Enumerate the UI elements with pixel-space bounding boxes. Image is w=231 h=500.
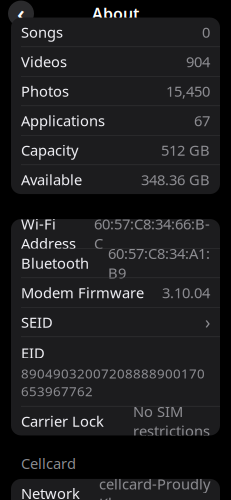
button[interactable]: Songs xyxy=(11,18,220,47)
button[interactable]: Videos xyxy=(11,47,220,76)
staticText: Songs xyxy=(21,22,63,42)
staticText: 89049032007208888900170653967762 xyxy=(21,364,205,400)
staticText: 348.36 GB xyxy=(141,170,210,189)
staticText: 60:57:C8:34:A1:B9 xyxy=(108,244,210,283)
staticText: EID xyxy=(21,343,45,363)
staticText: 15,450 xyxy=(166,81,210,101)
staticText: › xyxy=(205,311,210,334)
button[interactable]: SEID xyxy=(11,308,220,337)
button[interactable]: Capacity xyxy=(11,136,220,165)
staticText: Bluetooth xyxy=(21,253,89,273)
staticText: 512 GB xyxy=(161,140,210,160)
button[interactable]: EID xyxy=(11,337,220,406)
staticText: Available xyxy=(21,170,82,189)
staticText: 67 xyxy=(194,111,210,130)
staticText: Videos xyxy=(21,52,67,71)
button[interactable]: Bluetooth xyxy=(11,249,220,278)
button[interactable]: Wi-Fi Address xyxy=(11,219,220,248)
button[interactable]: Carrier Lock xyxy=(11,406,220,435)
staticText: Wi-Fi Address xyxy=(21,214,76,253)
staticText: SEID xyxy=(21,312,53,332)
staticText: Network xyxy=(21,484,80,500)
staticText: About xyxy=(92,3,139,24)
staticText: cellcard-Proudly Khmer xyxy=(99,474,210,500)
staticText: 0 xyxy=(202,22,210,42)
staticText: 904 xyxy=(186,52,210,71)
staticText: Photos xyxy=(21,81,69,101)
button[interactable]: Photos xyxy=(11,77,220,106)
staticText: 60:57:C8:34:66:BC xyxy=(94,214,210,253)
button[interactable]: Available xyxy=(11,165,220,194)
staticText: 3.10.04 xyxy=(162,283,210,302)
staticText: Applications xyxy=(21,111,105,130)
button[interactable]: Network xyxy=(11,479,220,500)
staticText: Carrier Lock xyxy=(21,411,104,431)
button[interactable]: Modem Firmware xyxy=(11,278,220,307)
button[interactable]: Applications xyxy=(11,106,220,135)
staticText: ‹ xyxy=(17,0,25,29)
button[interactable]: Back xyxy=(6,0,36,29)
staticText: Cellcard xyxy=(21,453,76,473)
staticText: No SIM restrictions xyxy=(133,401,210,440)
staticText: Modem Firmware xyxy=(21,283,144,302)
staticText: Capacity xyxy=(21,140,78,160)
